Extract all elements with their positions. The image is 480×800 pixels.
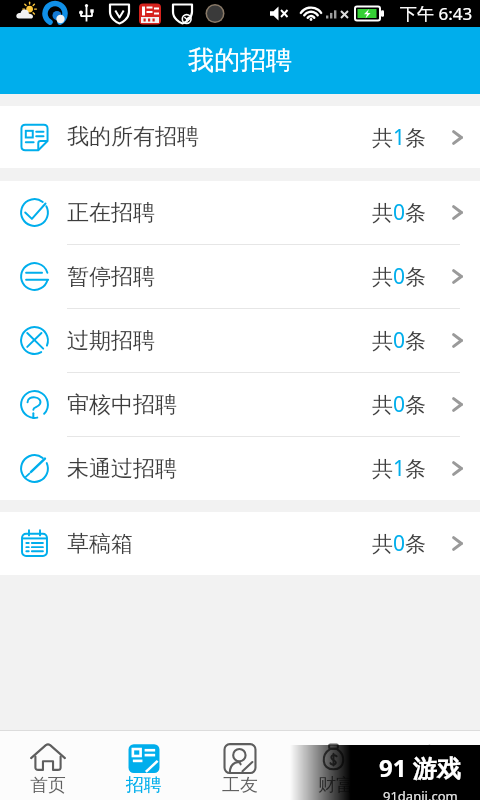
button[interactable]: 首页 [0, 731, 96, 800]
staticText: 草稿箱 [67, 530, 133, 558]
staticText: 共0条 [372, 326, 427, 355]
staticText: 暂停招聘 [67, 263, 155, 291]
staticText: 91danji.com [383, 787, 458, 800]
button[interactable]: 工友 [192, 731, 288, 800]
button[interactable]: 正在招聘 [0, 181, 480, 244]
button[interactable]: 财富 [288, 731, 384, 800]
staticText: 财富 [318, 774, 354, 797]
staticText: 正在招聘 [67, 199, 155, 227]
staticText: 共0条 [372, 529, 427, 558]
staticText: 91 游戏 [379, 751, 461, 784]
staticText: 审核中招聘 [67, 391, 177, 419]
staticText: 共1条 [372, 123, 427, 152]
staticText: 我的 [414, 774, 450, 797]
staticText: 我的所有招聘 [67, 123, 199, 151]
staticText: 共0条 [372, 390, 427, 419]
staticText: 招聘 [126, 774, 162, 797]
staticText: 未通过招聘 [67, 455, 177, 483]
button[interactable]: 未通过招聘 [0, 437, 480, 500]
button[interactable]: 过期招聘 [0, 309, 480, 372]
staticText: 共0条 [372, 198, 427, 227]
staticText: 过期招聘 [67, 327, 155, 355]
staticText: 我的招聘 [188, 44, 292, 77]
staticText: 首页 [30, 774, 66, 797]
staticText: 下午 6:43 [400, 2, 473, 25]
staticText: 共0条 [372, 262, 427, 291]
button[interactable]: 我的所有招聘 [0, 106, 480, 168]
button[interactable]: 草稿箱 [0, 512, 480, 575]
button[interactable]: 我的 [384, 731, 480, 800]
staticText: 工友 [222, 774, 258, 797]
button[interactable]: 审核中招聘 [0, 373, 480, 436]
staticText: 共1条 [372, 454, 427, 483]
button[interactable]: 暂停招聘 [0, 245, 480, 308]
button[interactable]: 招聘 [96, 731, 192, 800]
